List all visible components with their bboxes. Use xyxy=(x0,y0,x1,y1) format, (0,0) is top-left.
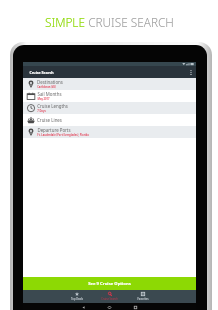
staticText: Departure Ports xyxy=(37,127,71,133)
staticText: Destinations xyxy=(37,79,63,85)
button[interactable]: Cruise Lines xyxy=(23,114,196,126)
staticText: Cruise Search xyxy=(29,70,54,75)
button[interactable]: Top Deals xyxy=(60,290,93,303)
button[interactable]: Recents xyxy=(122,303,148,310)
staticText: Top Deals xyxy=(71,297,83,301)
staticText: Cruise Lines xyxy=(37,117,62,123)
button[interactable]: Destinations xyxy=(23,78,196,90)
button[interactable]: Cruise Lengths xyxy=(23,102,196,114)
staticText: CRUISE SEARCH xyxy=(88,14,174,30)
button[interactable]: Departure Ports xyxy=(23,126,196,138)
button[interactable]: Sail Months xyxy=(23,90,196,102)
staticText: May 2017 xyxy=(37,97,50,101)
staticText: Caribbean (45) xyxy=(37,85,56,89)
staticText: Cruise Lengths xyxy=(37,103,68,109)
button[interactable]: More options xyxy=(186,66,195,78)
button[interactable]: Home xyxy=(96,303,122,310)
staticText: Favorites xyxy=(137,297,149,301)
staticText: Cruise Search xyxy=(101,297,118,301)
button[interactable]: See 9 Cruise Options xyxy=(23,277,196,290)
staticText: Sail Months xyxy=(37,91,62,97)
button[interactable]: Back xyxy=(70,303,96,310)
staticText: See 9 Cruise Options xyxy=(88,281,131,287)
staticText: SIMPLE xyxy=(45,14,85,30)
staticText: 7 Days xyxy=(37,109,46,113)
button[interactable]: Favorites xyxy=(126,290,159,303)
button[interactable]: Cruise Search xyxy=(93,290,126,303)
staticText: Ft. Lauderdale (Port Everglades), Florid… xyxy=(37,133,89,137)
